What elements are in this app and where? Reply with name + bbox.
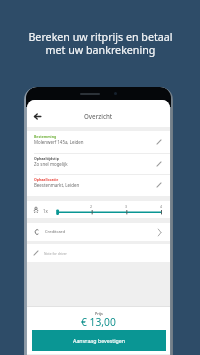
staticText: 1x [43, 208, 48, 214]
staticText: Bereken uw ritprijs en betaal met uw ban… [28, 30, 173, 57]
staticText: Ophaaltijdstip [34, 156, 59, 161]
staticText: 3 [125, 204, 128, 209]
staticText: Creditcard [45, 229, 65, 235]
button[interactable]: Creditcard [27, 223, 170, 241]
staticText: 2 [90, 204, 93, 209]
staticText: 4 [160, 204, 163, 209]
staticText: Prijs [95, 311, 103, 316]
staticText: Note for driver [44, 251, 67, 255]
staticText: Molenwerf 145a, Leiden [34, 139, 84, 145]
staticText: Aanvraag bevestigen [73, 337, 126, 344]
button[interactable]: Bestemming [27, 131, 170, 153]
button[interactable]: Back [29, 108, 45, 124]
staticText: € 13,00 [81, 315, 116, 329]
button[interactable]: Aanvraag bevestigen [32, 330, 166, 351]
button[interactable]: Note for driver [27, 244, 170, 262]
button[interactable]: Ophaallocatie [27, 174, 170, 196]
button[interactable]: Ophaaltijdstip [27, 153, 170, 175]
staticText: Ophaallocatie [34, 177, 59, 182]
staticText: Bestemming [34, 134, 57, 139]
staticText: Beestenmarkt, Leiden [34, 182, 80, 188]
staticText: Zo snel mogelijk [34, 161, 68, 167]
staticText: Overzicht [84, 112, 113, 120]
